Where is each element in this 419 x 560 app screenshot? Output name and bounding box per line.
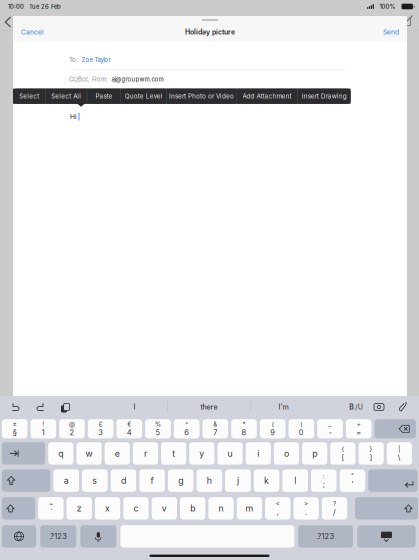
button[interactable]: Paste xyxy=(87,89,121,104)
button[interactable]: Quote Level xyxy=(121,89,166,104)
button[interactable]: | xyxy=(387,442,412,465)
button[interactable]: p xyxy=(302,442,327,465)
button[interactable]: > xyxy=(293,497,319,520)
button[interactable]: @ xyxy=(59,419,85,438)
button[interactable]: " xyxy=(340,469,365,492)
button[interactable]: Select All xyxy=(46,89,87,104)
staticText: there xyxy=(200,403,217,411)
button[interactable]: Select xyxy=(13,89,45,104)
button[interactable]: .?123 xyxy=(298,525,353,548)
button[interactable]: ? xyxy=(322,497,347,520)
button[interactable]: Camera xyxy=(367,396,391,418)
button[interactable]: ) xyxy=(288,419,314,438)
staticText: " xyxy=(351,472,354,480)
button[interactable] xyxy=(2,525,36,548)
button[interactable]: Format xyxy=(345,396,367,418)
button[interactable]: + xyxy=(346,419,371,438)
button[interactable]: a xyxy=(53,469,79,492)
button[interactable]: there xyxy=(167,398,250,416)
button[interactable]: } xyxy=(358,442,384,465)
button[interactable]: Attach xyxy=(391,396,415,418)
button[interactable]: j xyxy=(225,469,251,492)
staticText: Hi xyxy=(70,112,77,121)
button[interactable]: * xyxy=(231,419,257,438)
button[interactable]: h xyxy=(196,469,222,492)
button[interactable]: € xyxy=(116,419,142,438)
button[interactable]: r xyxy=(133,442,158,465)
button[interactable]: d xyxy=(111,469,136,492)
button[interactable]: I xyxy=(102,398,167,416)
button[interactable]: Add Attachment xyxy=(236,89,297,104)
button[interactable]: Zoe Taylor xyxy=(81,56,110,63)
button[interactable]: n xyxy=(208,497,234,520)
staticText: Add Attachment xyxy=(242,92,291,100)
staticText: ? xyxy=(333,500,336,507)
button[interactable] xyxy=(2,442,45,465)
staticText: .?123 xyxy=(317,532,335,541)
button[interactable]: .?123 xyxy=(40,525,76,548)
button[interactable] xyxy=(120,525,294,548)
button[interactable]: Redo xyxy=(28,396,52,418)
button[interactable] xyxy=(357,525,416,548)
button[interactable]: f xyxy=(139,469,165,492)
button[interactable]: Back xyxy=(4,17,12,27)
staticText: 0 xyxy=(299,428,304,437)
staticText: p xyxy=(312,448,317,459)
button[interactable]: b xyxy=(180,497,205,520)
staticText: } xyxy=(370,445,373,453)
button[interactable] xyxy=(2,469,50,492)
button[interactable]: aj@groupwm.com xyxy=(111,76,163,83)
button[interactable] xyxy=(368,469,418,492)
staticText: . xyxy=(305,507,307,516)
button[interactable]: & xyxy=(202,419,228,438)
button[interactable]: c xyxy=(123,497,149,520)
button[interactable]: y xyxy=(189,442,214,465)
button[interactable]: Paste xyxy=(52,396,76,418)
button[interactable]: % xyxy=(145,419,171,438)
button[interactable] xyxy=(2,497,35,520)
button[interactable]: s xyxy=(82,469,108,492)
button[interactable]: w xyxy=(76,442,102,465)
button[interactable]: x xyxy=(95,497,120,520)
button[interactable]: Insert Photo or Video xyxy=(167,89,236,104)
button[interactable]: ^ xyxy=(174,419,199,438)
button[interactable] xyxy=(80,525,116,548)
button[interactable]: Send xyxy=(381,25,401,39)
staticText: U xyxy=(358,403,363,411)
button[interactable]: ~ xyxy=(38,497,64,520)
button[interactable]: : xyxy=(311,469,337,492)
button[interactable]: u xyxy=(217,442,243,465)
button[interactable]: m xyxy=(237,497,262,520)
staticText: { xyxy=(341,445,344,453)
button[interactable]: t xyxy=(161,442,186,465)
button[interactable]: ( xyxy=(260,419,285,438)
button[interactable]: g xyxy=(168,469,193,492)
button[interactable]: k xyxy=(254,469,279,492)
button[interactable] xyxy=(355,497,418,520)
button[interactable]: z xyxy=(67,497,92,520)
staticText: 5 xyxy=(155,428,160,437)
staticText: h xyxy=(207,475,212,486)
button[interactable]: q xyxy=(48,442,73,465)
button[interactable]: l xyxy=(282,469,308,492)
button[interactable]: < xyxy=(265,497,290,520)
button[interactable]: £ xyxy=(88,419,113,438)
button[interactable]: ± xyxy=(2,419,27,438)
button[interactable]: Cancel xyxy=(19,25,46,39)
button[interactable]: v xyxy=(152,497,177,520)
button[interactable]: i xyxy=(246,442,271,465)
button[interactable]: ! xyxy=(30,419,56,438)
button[interactable]: o xyxy=(274,442,299,465)
staticText: s xyxy=(92,475,97,486)
button[interactable]: e xyxy=(105,442,130,465)
button[interactable] xyxy=(374,419,416,438)
staticText: > xyxy=(304,500,308,507)
button[interactable]: _ xyxy=(317,419,343,438)
button[interactable]: { xyxy=(330,442,355,465)
button[interactable]: I'm xyxy=(251,398,316,416)
button[interactable]: Insert Drawing xyxy=(298,89,351,104)
staticText: n xyxy=(218,503,223,514)
staticText: v xyxy=(162,503,167,514)
button[interactable]: Undo xyxy=(4,396,28,418)
button[interactable]: Compose xyxy=(402,16,413,27)
